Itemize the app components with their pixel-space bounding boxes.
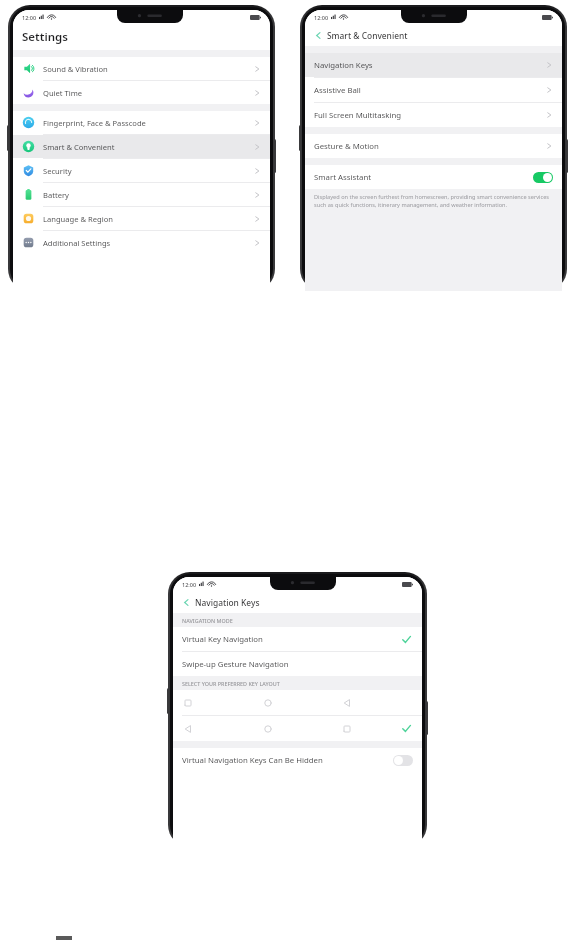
- button[interactable]: Assistive Ball: [305, 78, 562, 102]
- staticText: Sound & Vibration: [43, 64, 254, 74]
- staticText: Assistive Ball: [314, 85, 546, 96]
- staticText: Navigation Keys: [195, 597, 260, 608]
- staticText: Smart & Convenient: [327, 30, 408, 41]
- button[interactable]: Back: [311, 28, 325, 42]
- button[interactable]: Sound & Vibration: [13, 57, 270, 80]
- staticText: Security: [43, 166, 254, 176]
- button[interactable]: Smart & Convenient: [13, 135, 270, 158]
- button[interactable]: Key layout option: [173, 716, 422, 741]
- staticText: Settings: [22, 29, 68, 45]
- staticText: Full Screen Multitasking: [314, 110, 546, 121]
- staticText: 12:00: [314, 14, 329, 21]
- staticText: Smart & Convenient: [43, 142, 254, 152]
- staticText: Fingerprint, Face & Passcode: [43, 118, 254, 128]
- button[interactable]: Virtual Navigation Keys Can Be Hidden: [173, 748, 422, 772]
- staticText: Virtual Key Navigation: [182, 634, 401, 645]
- staticText: Language & Region: [43, 214, 254, 224]
- staticText: 12:00: [22, 14, 37, 21]
- staticText: 12:00: [182, 581, 197, 588]
- button[interactable]: Smart Assistant: [305, 165, 562, 189]
- button[interactable]: Key layout option: [173, 690, 422, 715]
- staticText: Virtual Navigation Keys Can Be Hidden: [182, 755, 393, 766]
- staticText: Swipe-up Gesture Navigation: [182, 659, 412, 670]
- button[interactable]: Toggle on: [533, 172, 553, 183]
- button[interactable]: Back: [179, 595, 193, 609]
- button[interactable]: Virtual Key Navigation: [173, 627, 422, 651]
- button[interactable]: Full Screen Multitasking: [305, 103, 562, 127]
- staticText: Gesture & Motion: [314, 141, 546, 152]
- button[interactable]: Gesture & Motion: [305, 134, 562, 158]
- button[interactable]: Quiet Time: [13, 81, 270, 104]
- button[interactable]: Language & Region: [13, 207, 270, 230]
- button[interactable]: Navigation Keys: [305, 53, 562, 77]
- button[interactable]: Battery: [13, 183, 270, 206]
- staticText: NAVIGATION MODE: [182, 617, 233, 624]
- staticText: Additional Settings: [43, 238, 254, 248]
- staticText: Battery: [43, 190, 254, 200]
- staticText: Smart Assistant: [314, 172, 533, 183]
- staticText: Displayed on the screen furthest from ho…: [314, 193, 550, 209]
- button[interactable]: Toggle off: [393, 755, 413, 766]
- button[interactable]: Additional Settings: [13, 231, 270, 254]
- staticText: SELECT YOUR PREFERRED KEY LAYOUT: [182, 680, 280, 687]
- button[interactable]: Swipe-up Gesture Navigation: [173, 652, 422, 676]
- staticText: Quiet Time: [43, 88, 254, 98]
- button[interactable]: Fingerprint, Face & Passcode: [13, 111, 270, 134]
- button[interactable]: Security: [13, 159, 270, 182]
- staticText: Navigation Keys: [314, 60, 546, 71]
